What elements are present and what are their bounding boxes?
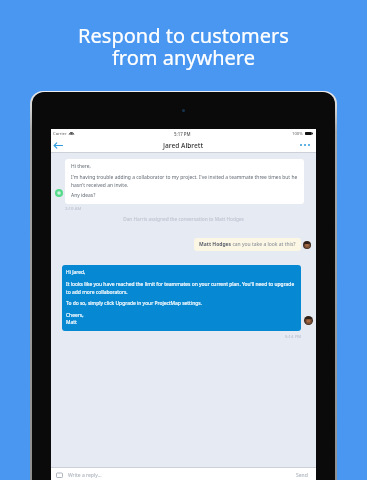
staticText: Send: [296, 472, 308, 479]
staticText: Carrier: [53, 131, 67, 137]
button[interactable]: More options: [297, 142, 313, 148]
staticText: Any ideas?: [71, 192, 96, 199]
staticText: 5:17 PM: [174, 131, 191, 137]
staticText: 5:14 PM: [285, 333, 302, 339]
staticText: Dan Harris assigned the conversation to …: [51, 216, 316, 223]
staticText: 100%: [292, 131, 303, 137]
staticText: Hi there,: [71, 163, 91, 170]
staticText: Cheers,: [66, 312, 84, 319]
staticText: Matt Hodges can you take a look at this?: [199, 241, 296, 248]
button[interactable]: Attach file: [56, 472, 63, 479]
staticText: I'm having trouble adding a collaborator…: [71, 174, 299, 188]
staticText: Respond to customers from anywhere: [0, 22, 367, 71]
button[interactable]: Send: [293, 470, 311, 480]
staticText: Jared Albrett: [163, 141, 204, 150]
staticText: 2:10 AM: [65, 205, 82, 211]
staticText: Matt: [66, 319, 77, 326]
staticText: Hi Jared,: [66, 269, 86, 276]
staticText: It looks like you have reached the limit…: [66, 281, 299, 295]
button[interactable]: Back: [52, 139, 64, 152]
staticText: To do so, simply click Upgrade in your P…: [66, 300, 202, 307]
staticText: Write a reply...: [68, 472, 102, 479]
